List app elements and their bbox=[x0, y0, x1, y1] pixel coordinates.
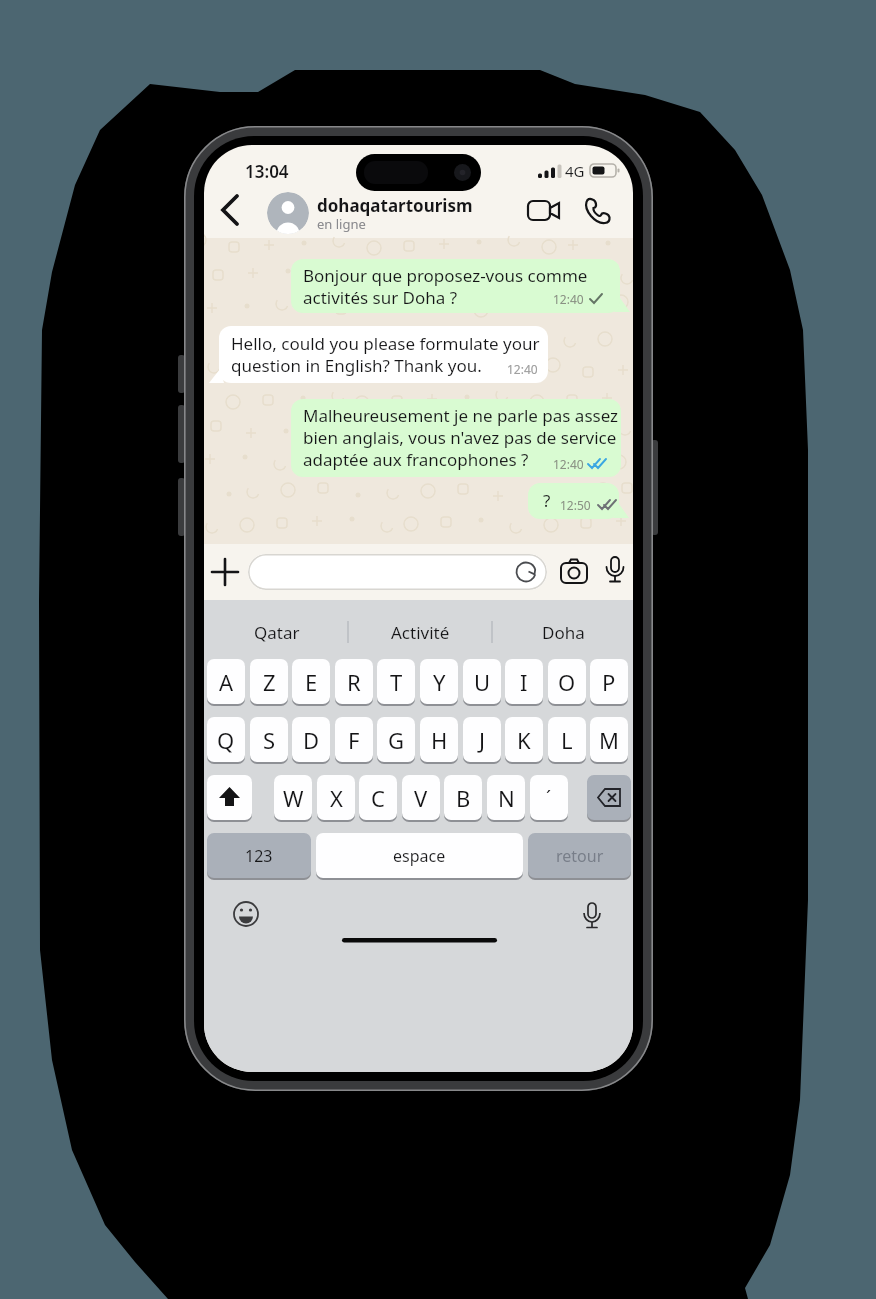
staticText: Bonjour que proposez-vous comme activité… bbox=[303, 264, 588, 309]
staticText: espace bbox=[393, 845, 446, 867]
button[interactable]: K bbox=[505, 717, 543, 762]
button[interactable]: Z bbox=[250, 659, 288, 704]
staticText: 13:04 bbox=[245, 160, 289, 183]
staticText: Q bbox=[217, 725, 235, 755]
button[interactable] bbox=[587, 775, 631, 820]
button[interactable]: W bbox=[274, 775, 312, 820]
button[interactable]: P bbox=[590, 659, 628, 704]
button[interactable]: C bbox=[359, 775, 397, 820]
button[interactable]: N bbox=[487, 775, 525, 820]
button[interactable]: S bbox=[250, 717, 288, 762]
staticText: Activité bbox=[391, 621, 450, 644]
button[interactable]: D bbox=[292, 717, 330, 762]
staticText: X bbox=[330, 783, 343, 813]
button[interactable] bbox=[602, 555, 628, 589]
staticText: J bbox=[479, 725, 486, 755]
button[interactable]: espace bbox=[316, 833, 523, 878]
button[interactable]: L bbox=[548, 717, 586, 762]
staticText: 4G bbox=[565, 161, 585, 181]
staticText: 12:40 bbox=[507, 361, 538, 377]
button[interactable]: G bbox=[377, 717, 415, 762]
staticText: Qatar bbox=[254, 621, 300, 644]
staticText: retour bbox=[556, 845, 604, 867]
staticText: S bbox=[263, 725, 276, 755]
staticText: Y bbox=[433, 667, 446, 697]
staticText: ´ bbox=[546, 785, 552, 810]
staticText: K bbox=[517, 725, 531, 755]
button[interactable]: Malheureusement je ne parle pas assez bi… bbox=[291, 399, 621, 477]
button[interactable]: Q bbox=[207, 717, 245, 762]
button[interactable]: A bbox=[207, 659, 245, 704]
button[interactable]: retour bbox=[528, 833, 631, 878]
button[interactable]: X bbox=[317, 775, 355, 820]
button[interactable]: H bbox=[420, 717, 458, 762]
staticText: T bbox=[390, 667, 403, 697]
staticText: 123 bbox=[245, 845, 273, 867]
staticText: A bbox=[219, 667, 234, 697]
staticText: O bbox=[558, 667, 576, 697]
staticText: E bbox=[305, 667, 318, 697]
button[interactable]: Qatar bbox=[214, 614, 339, 650]
button[interactable]: Hello, could you please formulate your q… bbox=[219, 326, 548, 383]
staticText: F bbox=[348, 725, 360, 755]
button[interactable] bbox=[248, 554, 547, 590]
staticText: U bbox=[474, 667, 491, 697]
button[interactable]: F bbox=[335, 717, 373, 762]
button[interactable]: B bbox=[444, 775, 482, 820]
button[interactable]: V bbox=[402, 775, 440, 820]
staticText: 12:50 bbox=[560, 497, 591, 513]
button[interactable] bbox=[524, 195, 564, 227]
button[interactable]: E bbox=[292, 659, 330, 704]
button[interactable] bbox=[582, 195, 618, 229]
staticText: ? bbox=[543, 489, 551, 512]
button[interactable] bbox=[214, 193, 248, 229]
staticText: L bbox=[561, 725, 573, 755]
staticText: 12:40 bbox=[553, 456, 584, 472]
staticText: C bbox=[371, 783, 385, 813]
staticText: H bbox=[431, 725, 448, 755]
button[interactable] bbox=[559, 557, 589, 587]
button[interactable]: Doha bbox=[500, 614, 626, 650]
button[interactable]: Y bbox=[420, 659, 458, 704]
staticText: Z bbox=[263, 667, 276, 697]
button[interactable]: J bbox=[463, 717, 501, 762]
staticText: M bbox=[599, 725, 619, 755]
staticText: Malheureusement je ne parle pas assez bi… bbox=[303, 404, 619, 471]
button[interactable]: M bbox=[590, 717, 628, 762]
button[interactable]: R bbox=[335, 659, 373, 704]
staticText: Hello, could you please formulate your q… bbox=[231, 332, 540, 377]
staticText: R bbox=[347, 667, 361, 697]
button[interactable] bbox=[207, 775, 252, 820]
button[interactable]: I bbox=[505, 659, 543, 704]
button[interactable]: U bbox=[463, 659, 501, 704]
staticText: I bbox=[520, 667, 528, 697]
staticText: V bbox=[414, 783, 428, 813]
staticText: B bbox=[456, 783, 471, 813]
button[interactable] bbox=[210, 557, 240, 587]
staticText: en ligne bbox=[317, 215, 366, 233]
staticText: N bbox=[498, 783, 515, 813]
button[interactable]: ´ bbox=[530, 775, 568, 820]
staticText: W bbox=[283, 783, 304, 813]
button[interactable]: Activité bbox=[356, 614, 484, 650]
button[interactable]: T bbox=[377, 659, 415, 704]
button[interactable]: 123 bbox=[207, 833, 311, 878]
staticText: P bbox=[602, 667, 616, 697]
button[interactable]: ? bbox=[528, 483, 619, 519]
staticText: D bbox=[303, 725, 320, 755]
button[interactable]: O bbox=[548, 659, 586, 704]
staticText: G bbox=[388, 725, 405, 755]
staticText: dohaqatartourism bbox=[317, 194, 473, 217]
staticText: Doha bbox=[542, 621, 585, 644]
button[interactable]: Bonjour que proposez-vous comme activité… bbox=[291, 259, 620, 313]
staticText: 12:40 bbox=[553, 291, 584, 307]
